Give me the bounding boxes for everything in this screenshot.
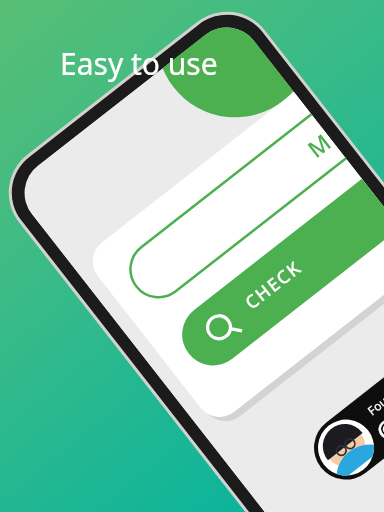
button[interactable]: Easy to use – app phone preview (0, 0, 384, 512)
other: Easy to use – app phone preview (0, 0, 384, 512)
